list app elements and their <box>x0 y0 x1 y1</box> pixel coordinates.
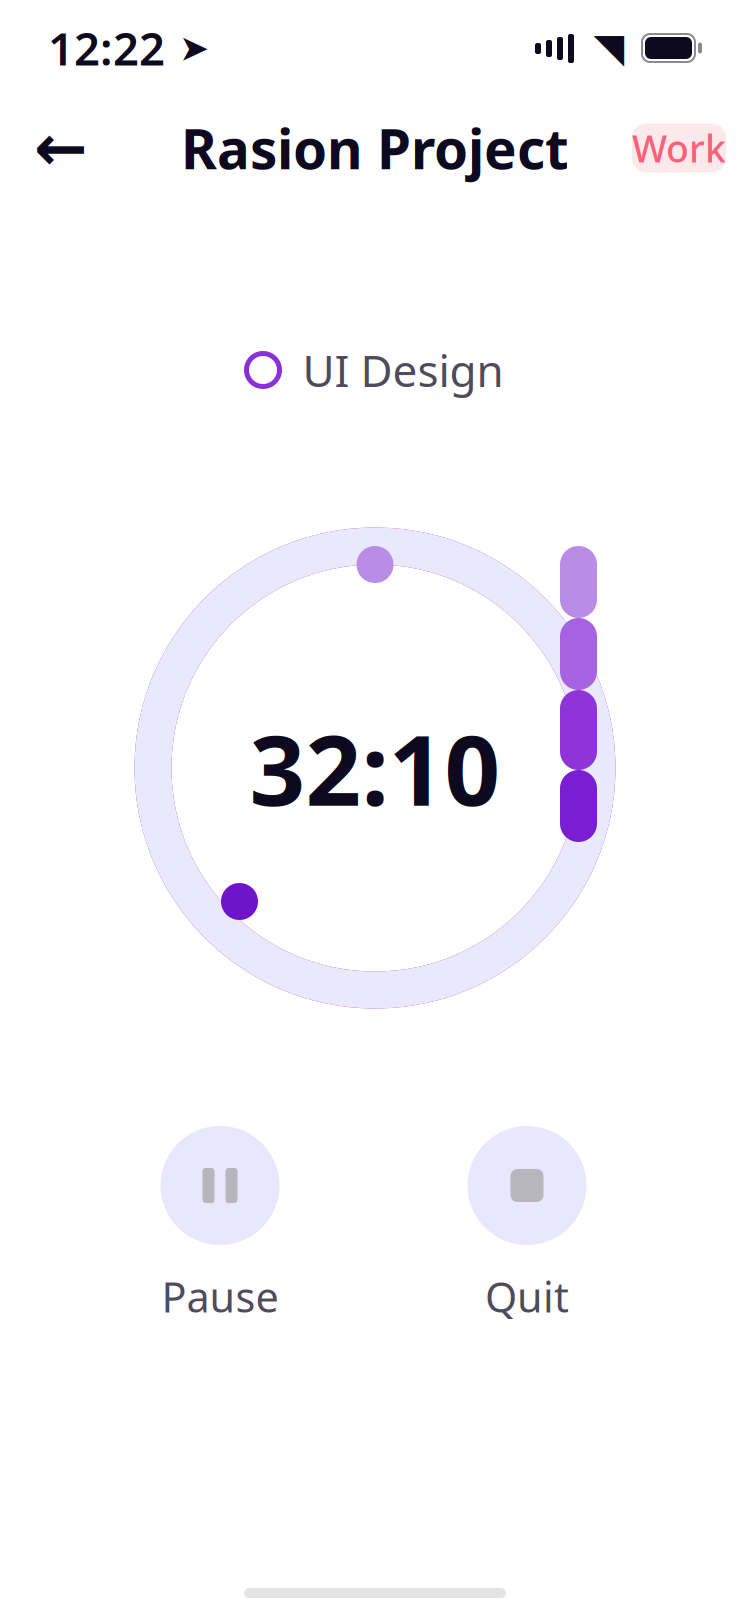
staticText: ➤ <box>179 28 209 68</box>
staticText: Work <box>632 123 726 173</box>
staticText: Rasion Project <box>181 112 569 184</box>
staticText: ◥ <box>593 25 624 71</box>
staticText: 12:22 <box>48 18 165 78</box>
staticText: Pause <box>161 1269 278 1324</box>
staticText: Quit <box>485 1269 569 1324</box>
staticText: ← <box>34 112 88 184</box>
button[interactable]: Work <box>632 123 726 172</box>
button[interactable]: Pause <box>145 1126 295 1324</box>
button[interactable]: Quit <box>452 1126 602 1324</box>
button[interactable]: Back <box>22 109 100 187</box>
staticText: 32:10 <box>249 703 500 833</box>
staticText: UI Design <box>302 341 503 399</box>
